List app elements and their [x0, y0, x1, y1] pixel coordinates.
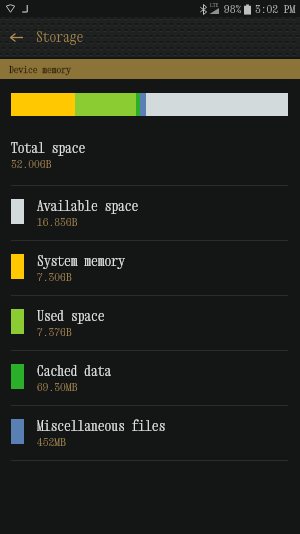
staticText: Storage — [36, 29, 84, 45]
staticText: Total space — [11, 140, 86, 156]
staticText: LTE — [210, 2, 219, 9]
staticText: 7.37GB — [37, 325, 72, 339]
staticText: 69.30MB — [37, 380, 78, 394]
staticText: Cached data — [37, 363, 112, 379]
staticText: Device memory — [9, 64, 71, 75]
button[interactable]: System memory — [0, 240, 300, 295]
button[interactable]: Available space — [0, 185, 300, 240]
staticText: Used space — [37, 308, 105, 324]
staticText: System memory — [37, 253, 125, 269]
staticText: Miscellaneous files — [37, 418, 166, 434]
staticText: 32.00GB — [11, 157, 52, 171]
button[interactable]: Cached data — [0, 350, 300, 405]
staticText: 7.30GB — [37, 270, 72, 284]
button[interactable]: Miscellaneous files — [0, 405, 300, 460]
staticText: 452MB — [37, 435, 66, 449]
button[interactable]: Back — [0, 21, 32, 53]
button[interactable]: Used space — [0, 295, 300, 350]
staticText: 16.83GB — [37, 215, 78, 229]
staticText: Available space — [37, 198, 139, 214]
staticText: 3:02 PM — [255, 2, 296, 16]
staticText: 98% — [224, 2, 242, 16]
